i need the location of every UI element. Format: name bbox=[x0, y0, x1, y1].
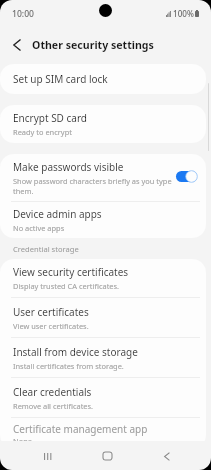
staticText: Make passwords visible bbox=[13, 160, 124, 174]
staticText: Device admin apps bbox=[13, 207, 102, 221]
staticText: Display trusted CA certificates. bbox=[13, 281, 120, 291]
staticText: User certificates bbox=[13, 305, 89, 319]
button[interactable]: Home bbox=[90, 442, 124, 470]
staticText: Show password characters briefly as you … bbox=[13, 176, 175, 196]
button[interactable]: User certificates bbox=[0, 298, 206, 337]
button[interactable]: Clear credentials bbox=[0, 378, 206, 417]
staticText: 100% bbox=[173, 8, 194, 19]
staticText: 10:00 bbox=[12, 8, 35, 20]
button[interactable]: Certificate management app bbox=[0, 418, 206, 441]
staticText: Remove all certificates. bbox=[13, 401, 94, 411]
button[interactable]: Recent apps bbox=[31, 442, 65, 470]
staticText: No active apps bbox=[13, 223, 65, 233]
button[interactable]: Device admin apps bbox=[0, 202, 206, 238]
staticText: Encrypt SD card bbox=[13, 111, 88, 125]
button[interactable]: Encrypt SD card bbox=[0, 105, 206, 143]
staticText: View user certificates. bbox=[13, 321, 89, 331]
staticText: Install from device storage bbox=[13, 345, 138, 359]
button[interactable]: Set up SIM card lock bbox=[0, 64, 206, 94]
staticText: Clear credentials bbox=[13, 385, 92, 399]
button[interactable]: Make passwords visible bbox=[176, 171, 197, 182]
staticText: View security certificates bbox=[13, 265, 129, 279]
button[interactable]: Back bbox=[149, 442, 183, 470]
button[interactable]: View security certificates bbox=[0, 259, 206, 297]
staticText: Ready to encrypt bbox=[13, 127, 72, 137]
button[interactable]: Make passwords visible bbox=[0, 154, 206, 201]
staticText: Certificate management app bbox=[13, 422, 148, 436]
button[interactable]: Install from device storage bbox=[0, 338, 206, 377]
staticText: Set up SIM card lock bbox=[13, 72, 108, 86]
staticText: Credential storage bbox=[13, 244, 79, 254]
button[interactable]: Navigate up bbox=[0, 26, 32, 64]
staticText: Other security settings bbox=[32, 38, 154, 52]
staticText: None bbox=[13, 436, 32, 441]
staticText: Install certificates from storage. bbox=[13, 361, 124, 371]
